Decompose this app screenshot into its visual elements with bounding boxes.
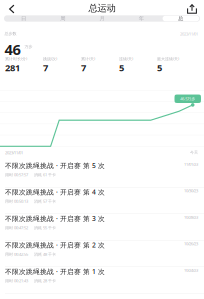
staticText: 10/30/23: [184, 188, 198, 193]
staticText: 用时 00:42:55: [5, 252, 28, 257]
staticText: 5: [119, 61, 124, 74]
button[interactable]: 不限次跳绳挑战 · 开启赛 第 3 次: [0, 214, 204, 240]
staticText: 今天: [190, 150, 198, 155]
staticText: 不限次跳绳挑战 · 开启赛 第 1 次: [5, 267, 105, 276]
staticText: 连续(天): [119, 56, 133, 61]
staticText: 月: [99, 15, 104, 22]
staticText: 用时 00:57:57: [5, 172, 28, 177]
staticText: 日: [21, 15, 26, 22]
staticText: 11/01/23: [184, 162, 198, 167]
staticText: 用时 00:21:43: [5, 278, 28, 283]
button[interactable]: 不限次跳绳挑战 · 开启赛 第 1 次: [0, 267, 204, 293]
staticText: 7: [81, 61, 86, 74]
staticText: 年: [139, 15, 144, 22]
staticText: 46: [4, 40, 20, 59]
button[interactable]: 不限次跳绳挑战 · 开启赛 第 4 次: [0, 187, 204, 214]
staticText: 10/26/23: [184, 241, 198, 246]
staticText: 281: [5, 61, 20, 74]
staticText: 用时 00:50:13: [5, 199, 28, 204]
staticText: 不限次跳绳挑战 · 开启赛 第 2 次: [5, 240, 105, 249]
staticText: 46.5万步: [180, 96, 195, 101]
button[interactable]: 月: [82, 15, 122, 22]
staticText: 消耗 61 千卡: [34, 172, 56, 177]
button[interactable]: 不限次跳绳挑战 · 开启赛 第 5 次: [0, 161, 204, 187]
button[interactable]: 年: [122, 15, 161, 22]
button[interactable]: 周: [43, 15, 82, 22]
staticText: 周: [60, 15, 65, 22]
staticText: 不限次跳绳挑战 · 开启赛 第 5 次: [5, 161, 105, 170]
staticText: 最大连续(天): [157, 56, 179, 61]
button[interactable]: 分享: [182, 2, 202, 16]
staticText: 不限次跳绳挑战 · 开启赛 第 4 次: [5, 187, 105, 196]
staticText: 万步: [24, 44, 32, 49]
button[interactable]: 不限次跳绳挑战 · 开启赛 第 2 次: [0, 240, 204, 267]
staticText: 消耗 55 千卡: [34, 225, 56, 230]
staticText: 消耗 28 千卡: [34, 278, 56, 283]
staticText: 总: [178, 15, 183, 22]
staticText: 5: [157, 61, 162, 74]
staticText: 总步数: [4, 31, 16, 36]
staticText: 挑战(次): [43, 56, 57, 61]
staticText: 总运动: [88, 2, 115, 14]
staticText: 累计(天): [81, 56, 95, 61]
staticText: 用时 00:47:52: [5, 225, 28, 230]
staticText: 10/24/23: [184, 268, 198, 273]
staticText: 7: [43, 61, 48, 74]
staticText: 消耗 48 千卡: [34, 252, 56, 257]
staticText: 累计时长(分): [5, 56, 27, 61]
button[interactable]: 总: [161, 15, 200, 22]
staticText: 不限次跳绳挑战 · 开启赛 第 3 次: [5, 214, 105, 223]
staticText: 2023/11/01: [180, 31, 198, 36]
staticText: 2023/11/01: [5, 150, 23, 155]
staticText: 消耗 57 千卡: [34, 199, 56, 204]
button[interactable]: 日: [4, 15, 43, 22]
button[interactable]: 返回: [2, 2, 22, 16]
staticText: 10/28/23: [184, 215, 198, 220]
